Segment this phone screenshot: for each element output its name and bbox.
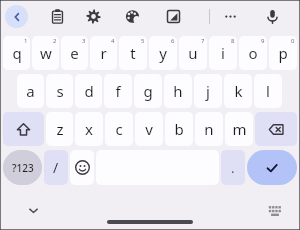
button[interactable]: b: [165, 112, 193, 146]
staticText: .: [231, 159, 235, 177]
staticText: k: [234, 81, 243, 101]
button[interactable]: f: [104, 74, 132, 108]
button[interactable]: Voice input: [261, 5, 284, 28]
button[interactable]: Switch keyboard: [264, 199, 286, 221]
button[interactable]: n: [195, 112, 223, 146]
button[interactable]: More options: [219, 5, 242, 28]
button[interactable]: Clipboard: [46, 5, 69, 28]
button[interactable]: l: [254, 74, 282, 108]
staticText: l: [266, 81, 270, 101]
button[interactable]: i: [209, 36, 237, 70]
button[interactable]: h: [164, 74, 192, 108]
staticText: v: [145, 119, 153, 139]
staticText: y: [159, 43, 167, 63]
button[interactable]: p: [269, 36, 297, 70]
staticText: g: [143, 81, 153, 101]
staticText: f: [115, 81, 121, 101]
staticText: s: [56, 81, 64, 101]
button[interactable]: s: [46, 74, 73, 108]
staticText: 8: [231, 37, 235, 45]
staticText: 6: [171, 37, 175, 45]
button[interactable]: /: [44, 150, 68, 185]
staticText: z: [56, 119, 64, 139]
button[interactable]: Backspace: [255, 112, 297, 146]
button[interactable]: x: [75, 112, 103, 146]
button[interactable]: k: [224, 74, 252, 108]
button[interactable]: Themes: [121, 5, 144, 28]
button[interactable]: Settings: [82, 5, 105, 28]
staticText: i: [221, 43, 225, 63]
button[interactable]: g: [134, 74, 162, 108]
button[interactable]: Shift: [3, 112, 44, 146]
staticText: q: [12, 43, 22, 63]
button[interactable]: a: [17, 74, 44, 108]
button[interactable]: d: [75, 74, 102, 108]
staticText: 3: [82, 37, 86, 45]
staticText: ?123: [12, 161, 34, 175]
staticText: m: [232, 119, 247, 139]
button[interactable]: Emoji: [70, 150, 94, 185]
button[interactable]: r: [90, 36, 117, 70]
staticText: c: [115, 119, 123, 139]
button[interactable]: Back: [5, 5, 28, 28]
staticText: 0: [291, 37, 295, 45]
staticText: 4: [111, 37, 115, 45]
button[interactable]: Hide keyboard: [22, 199, 44, 221]
button[interactable]: v: [135, 112, 163, 146]
button[interactable]: w: [32, 36, 59, 70]
staticText: 9: [261, 37, 265, 45]
staticText: /: [53, 158, 59, 177]
button[interactable]: e: [61, 36, 88, 70]
button[interactable]: Enter: [247, 150, 297, 185]
button[interactable]: Resize keyboard: [162, 5, 185, 28]
staticText: n: [204, 119, 214, 139]
button[interactable]: t: [119, 36, 147, 70]
button[interactable]: z: [46, 112, 73, 146]
button[interactable]: m: [225, 112, 253, 146]
button[interactable]: y: [149, 36, 177, 70]
staticText: 7: [201, 37, 205, 45]
button[interactable]: u: [179, 36, 207, 70]
button[interactable]: ?123: [3, 150, 42, 185]
staticText: o: [248, 43, 258, 63]
staticText: b: [174, 119, 184, 139]
button[interactable]: q: [3, 36, 30, 70]
button[interactable]: o: [239, 36, 267, 70]
staticText: a: [26, 81, 35, 101]
staticText: h: [173, 81, 183, 101]
staticText: 5: [141, 37, 145, 45]
staticText: e: [70, 43, 79, 63]
staticText: t: [130, 43, 136, 63]
staticText: d: [84, 81, 94, 101]
staticText: 2: [53, 37, 57, 45]
staticText: x: [85, 119, 93, 139]
button[interactable]: c: [105, 112, 133, 146]
staticText: u: [188, 43, 198, 63]
staticText: r: [100, 43, 107, 63]
staticText: j: [206, 81, 210, 101]
staticText: p: [278, 43, 288, 63]
staticText: 1: [24, 37, 28, 45]
button[interactable]: .: [221, 150, 245, 185]
staticText: w: [40, 43, 52, 63]
button[interactable]: j: [194, 74, 222, 108]
